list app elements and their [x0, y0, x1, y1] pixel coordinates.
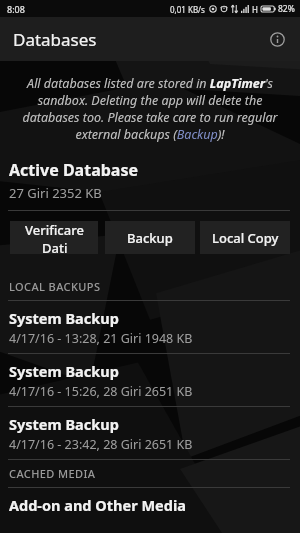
staticText: 0,01 KB/s: [170, 4, 205, 15]
staticText: Verificare: [25, 221, 84, 239]
staticText: LOCAL BACKUPS: [9, 279, 101, 294]
staticText: 4/17/16 - 13:28, 21 Giri 1948 KB: [9, 330, 193, 347]
staticText: 4/17/16 - 15:26, 28 Giri 2651 KB: [9, 383, 193, 400]
staticText: Backup: [127, 229, 173, 247]
staticText: H: [252, 4, 258, 15]
staticText: 4/17/16 - 23:42, 28 Giri 2651 KB: [9, 436, 193, 453]
staticText: 8:08: [7, 3, 25, 15]
button[interactable]: System Backup: [0, 301, 300, 353]
staticText: System Backup: [9, 308, 119, 328]
button[interactable]: Local Copy: [200, 221, 290, 254]
staticText: Dati: [42, 239, 68, 254]
button[interactable]: Info: [262, 24, 292, 54]
staticText: 27 Giri 2352 KB: [9, 184, 102, 202]
staticText: Active Database: [9, 159, 139, 181]
button[interactable]: Active Database: [0, 157, 300, 202]
staticText: System Backup: [9, 414, 119, 434]
button[interactable]: Add-on and Other Media: [0, 488, 300, 515]
staticText: 82%: [278, 3, 295, 15]
button[interactable]: Backup: [105, 221, 195, 254]
staticText: CACHED MEDIA: [9, 466, 96, 481]
staticText: Add-on and Other Media: [9, 495, 186, 515]
staticText: All databases listed are stored in LapTi…: [13, 75, 287, 143]
staticText: System Backup: [9, 361, 119, 381]
staticText: Databases: [13, 28, 97, 51]
button[interactable]: Verificare: [10, 221, 98, 254]
button[interactable]: System Backup: [0, 354, 300, 406]
staticText: Local Copy: [212, 229, 279, 247]
button[interactable]: System Backup: [0, 407, 300, 459]
